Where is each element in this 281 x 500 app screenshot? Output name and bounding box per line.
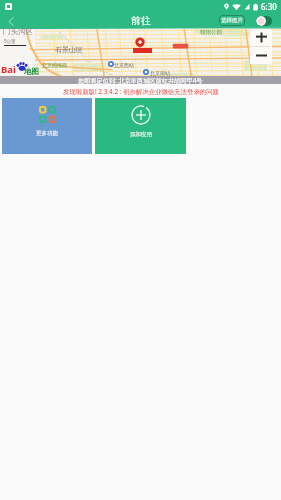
staticText: 发现啦新版! 2.3.4.2 : 初步解决企业微信无法登录的问题	[63, 87, 219, 96]
staticText: 地图	[24, 67, 39, 76]
staticText: Bai	[1, 63, 16, 76]
staticText: 6:30	[261, 1, 277, 12]
staticText: 石景山区	[55, 45, 83, 54]
staticText: 门头沟区	[3, 27, 33, 36]
staticText: 添加应用	[130, 131, 152, 138]
staticText: 北京园博园	[42, 62, 67, 68]
button[interactable]: 选择图片	[219, 15, 245, 26]
button[interactable]: 添加应用	[95, 98, 186, 154]
staticText: 北京南站	[150, 70, 170, 76]
staticText: 北京西站	[114, 62, 134, 68]
button[interactable]: Zoom out	[250, 47, 272, 64]
staticText: 更多功能	[36, 130, 58, 137]
staticText: 5公里	[4, 38, 16, 44]
button[interactable]: 更多功能	[2, 98, 92, 154]
staticText: 选择图片	[221, 17, 243, 24]
staticText: 朝阳公园	[200, 29, 222, 36]
staticText: 前往	[131, 15, 151, 27]
button[interactable]: Back	[0, 13, 22, 29]
staticText: 您即将定位到: 北京市西城区前红井胡同甲4号	[78, 76, 203, 84]
button[interactable]: Toggle location	[256, 16, 272, 26]
button[interactable]: Zoom in	[250, 29, 272, 46]
